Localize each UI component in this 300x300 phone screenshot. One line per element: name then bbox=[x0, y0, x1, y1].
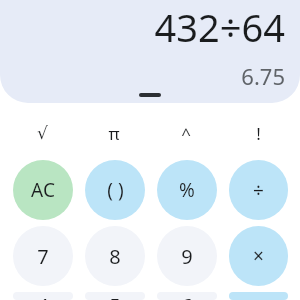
staticText: % bbox=[179, 177, 195, 203]
button[interactable]: ! bbox=[230, 114, 286, 152]
button[interactable]: 7 bbox=[13, 226, 73, 286]
button[interactable]: Expand display bbox=[139, 93, 161, 97]
staticText: ( ) bbox=[107, 177, 124, 203]
button[interactable]: 6 bbox=[157, 292, 217, 300]
staticText: ^ bbox=[181, 122, 191, 145]
staticText: 4 bbox=[37, 292, 49, 300]
button[interactable]: √ bbox=[14, 114, 70, 152]
staticText: 5 bbox=[109, 292, 121, 300]
staticText: 6 bbox=[181, 292, 193, 300]
button[interactable]: AC bbox=[13, 160, 73, 220]
staticText: 6.75 bbox=[241, 61, 285, 91]
staticText: √ bbox=[37, 123, 48, 143]
staticText: 432÷64 bbox=[154, 1, 285, 53]
button[interactable]: % bbox=[157, 160, 217, 220]
staticText: ! bbox=[256, 122, 261, 145]
staticText: 7 bbox=[37, 243, 49, 270]
staticText: 8 bbox=[109, 243, 121, 270]
button[interactable]: 4 bbox=[13, 292, 73, 300]
button[interactable]: 8 bbox=[85, 226, 145, 286]
button[interactable]: ÷ bbox=[229, 160, 288, 220]
button[interactable]: ( ) bbox=[85, 160, 145, 220]
staticText: AC bbox=[31, 177, 55, 203]
button[interactable]: 5 bbox=[85, 292, 145, 300]
button[interactable]: ^ bbox=[158, 114, 214, 152]
staticText: × bbox=[253, 243, 264, 269]
button[interactable]: 9 bbox=[157, 226, 217, 286]
button[interactable]: × bbox=[229, 226, 288, 286]
button[interactable]: π bbox=[86, 114, 142, 152]
staticText: 9 bbox=[181, 243, 193, 270]
button[interactable]: − bbox=[229, 292, 288, 300]
staticText: ÷ bbox=[253, 177, 264, 203]
staticText: π bbox=[108, 122, 120, 145]
